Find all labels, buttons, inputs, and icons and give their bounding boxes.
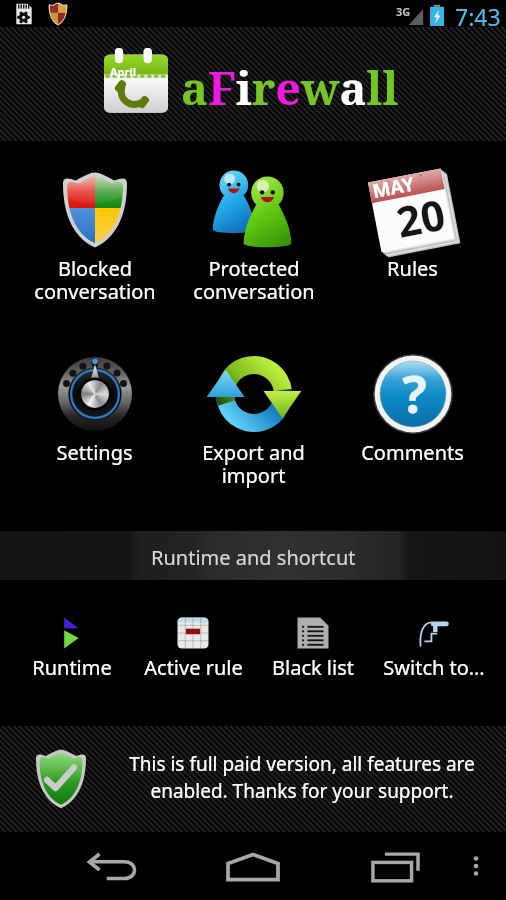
- button[interactable]: ?: [333, 349, 492, 466]
- staticText: 20: [391, 184, 450, 250]
- staticText: Comments: [361, 439, 464, 466]
- button[interactable]: Protected conversation: [174, 165, 333, 305]
- staticText: April: [110, 64, 137, 79]
- button[interactable]: Recent apps: [325, 832, 465, 900]
- staticText: This is full paid version, all features …: [122, 751, 482, 804]
- button[interactable]: MAY: [333, 165, 492, 282]
- button[interactable]: Export and import: [174, 349, 333, 489]
- staticText: Active rule: [144, 654, 243, 681]
- staticText: Rules: [387, 255, 438, 282]
- staticText: Protected conversation: [193, 255, 315, 305]
- staticText: Switch to…: [383, 654, 485, 681]
- staticText: aFirewall: [181, 57, 399, 118]
- button[interactable]: More options: [446, 832, 506, 900]
- staticText: Runtime and shortcut: [151, 544, 356, 571]
- button[interactable]: Blocked conversation: [15, 165, 174, 305]
- staticText: Black list: [272, 654, 354, 681]
- staticText: 3G: [396, 4, 411, 19]
- button[interactable]: Switch to…: [374, 617, 494, 681]
- staticText: Runtime: [32, 654, 112, 681]
- staticText: Settings: [56, 439, 133, 466]
- button[interactable]: Active rule: [133, 617, 253, 681]
- button[interactable]: Settings: [15, 349, 174, 466]
- staticText: Export and import: [202, 439, 305, 489]
- button[interactable]: Back: [42, 832, 182, 900]
- button[interactable]: Black list: [253, 617, 373, 681]
- staticText: 7:43: [455, 1, 501, 28]
- staticText: ?: [402, 357, 427, 428]
- button[interactable]: Runtime: [12, 617, 132, 681]
- button[interactable]: Home: [183, 832, 323, 900]
- staticText: Blocked conversation: [34, 255, 156, 305]
- staticText: MAY: [370, 171, 416, 204]
